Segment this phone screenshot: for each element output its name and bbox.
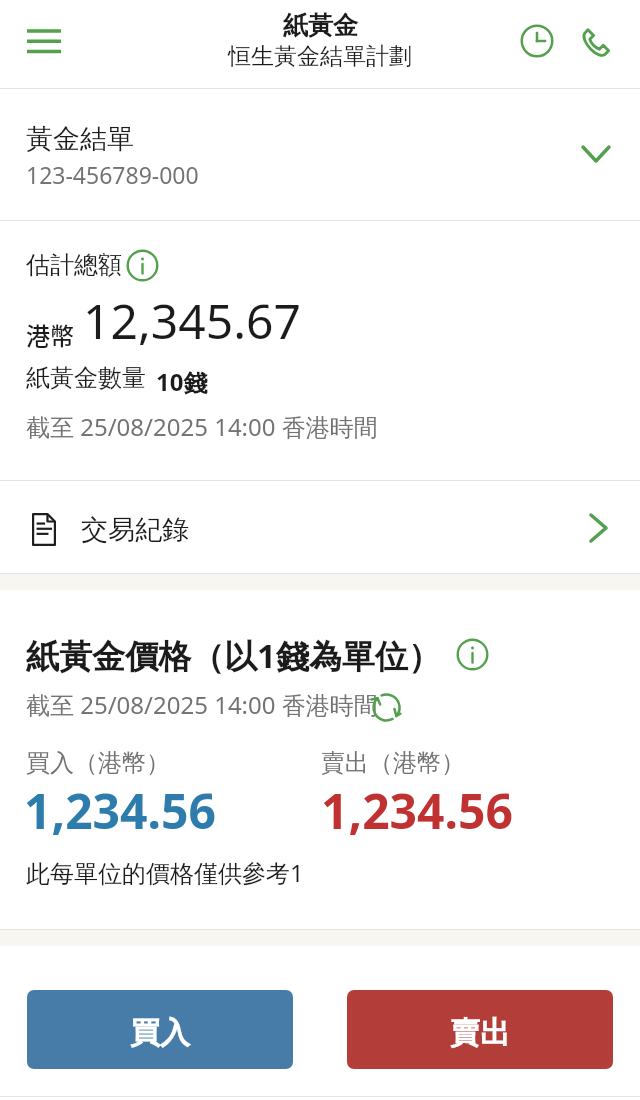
- button[interactable]: 賣出: [347, 990, 613, 1069]
- staticText: 恒生黃金結單計劃: [228, 42, 412, 71]
- staticText: 黃金結單: [26, 122, 134, 156]
- staticText: 此每單位的價格僅供參考1: [26, 856, 304, 889]
- staticText: 估計總額: [26, 250, 122, 280]
- staticText: 紙黃金價格（以1錢為單位）: [26, 633, 441, 678]
- button[interactable]: Info: [126, 249, 159, 282]
- staticText: 買入（港幣）: [26, 748, 170, 778]
- staticText: 截至 25/08/2025 14:00 香港時間: [26, 410, 378, 443]
- staticText: 1,234.56: [24, 778, 216, 843]
- staticText: 港幣: [26, 317, 74, 352]
- staticText: 1,234.56: [321, 778, 513, 843]
- staticText: 10錢: [156, 365, 208, 398]
- staticText: 賣出: [450, 1014, 510, 1052]
- button[interactable]: Menu: [14, 12, 72, 70]
- button[interactable]: History: [510, 15, 562, 67]
- staticText: 紙黃金數量: [26, 363, 146, 393]
- button[interactable]: Info: [456, 638, 489, 671]
- staticText: 123-456789-000: [26, 159, 199, 190]
- staticText: 12,345.67: [83, 288, 301, 353]
- staticText: 買入: [130, 1014, 190, 1052]
- button[interactable]: 交易紀錄: [0, 481, 640, 573]
- staticText: 截至 25/08/2025 14:00 香港時間: [26, 688, 378, 721]
- button[interactable]: Call: [571, 15, 623, 67]
- staticText: 賣出（港幣）: [321, 748, 465, 778]
- button[interactable]: 買入: [27, 990, 293, 1069]
- button[interactable]: 黃金結單: [0, 89, 640, 220]
- staticText: 交易紀錄: [81, 513, 189, 547]
- button[interactable]: Refresh: [372, 693, 401, 722]
- staticText: 紙黃金: [283, 10, 358, 41]
